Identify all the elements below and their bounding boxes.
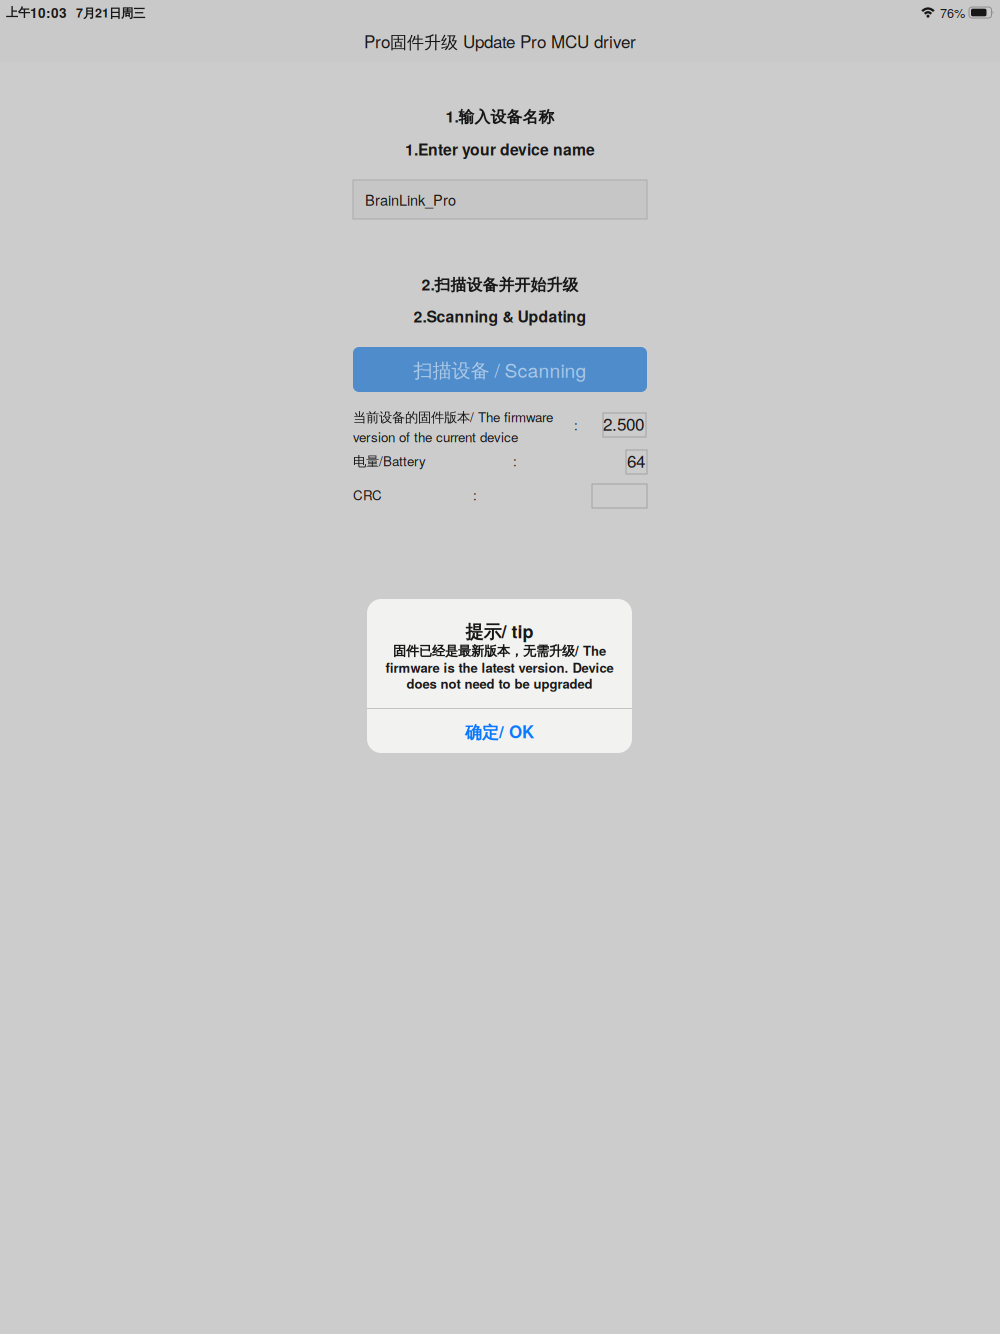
staticText: 2.Scanning & Updating: [413, 305, 586, 327]
staticText: Pro固件升级 Update Pro MCU driver: [364, 29, 636, 53]
staticText: 扫描设备 / Scanning: [413, 356, 586, 383]
button[interactable]: BrainLink_Pro: [353, 180, 647, 219]
staticText: :: [473, 485, 477, 504]
staticText: 确定/ OK: [465, 719, 534, 744]
staticText: 64: [627, 448, 645, 473]
staticText: 提示/ tip: [465, 618, 533, 644]
staticText: 电量/Battery: [353, 451, 426, 470]
staticText: :: [574, 415, 578, 434]
staticText: 上午: [6, 5, 30, 20]
staticText: 76%: [940, 3, 965, 21]
staticText: does not need to be upgraded: [406, 674, 592, 693]
staticText: 当前设备的固件版本/ The firmware: [353, 407, 553, 426]
staticText: 10:03: [30, 3, 67, 22]
staticText: 7月21日周三: [76, 4, 145, 21]
staticText: version of the current device: [353, 427, 518, 446]
staticText: firmware is the latest version. Device: [385, 658, 613, 677]
staticText: 1.输入设备名称: [445, 105, 554, 127]
staticText: 1.Enter your device name: [405, 138, 595, 160]
button[interactable]: 确定/ OK: [367, 709, 632, 754]
button[interactable]: 扫描设备 / Scanning: [353, 347, 647, 392]
staticText: 2.500: [603, 411, 644, 436]
staticText: 2.扫描设备并开始升级: [421, 273, 578, 295]
staticText: CRC: [353, 485, 382, 504]
staticText: BrainLink_Pro: [365, 189, 456, 210]
staticText: 固件已经是最新版本，无需升级/ The: [393, 641, 606, 660]
staticText: :: [513, 451, 517, 470]
